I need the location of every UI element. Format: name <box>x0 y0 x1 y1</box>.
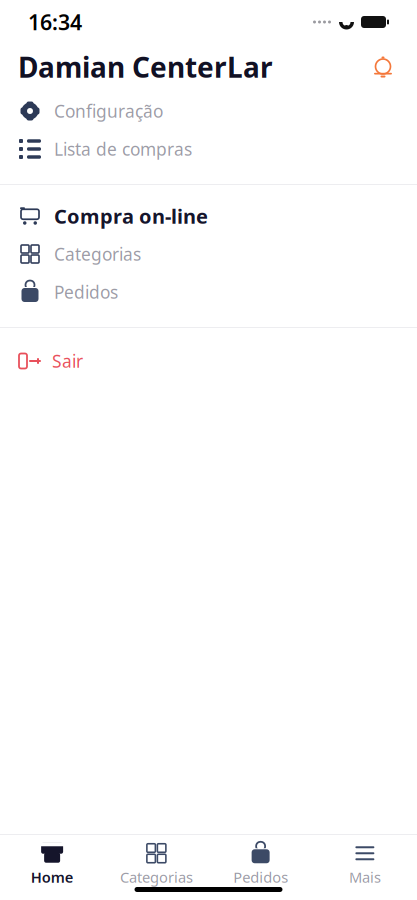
staticText: Mais <box>349 867 381 887</box>
staticText: Configuração <box>54 99 163 122</box>
button[interactable]: Categorias <box>104 838 208 891</box>
staticText: Categorias <box>120 867 193 887</box>
staticText: Categorias <box>54 242 141 265</box>
button[interactable]: Configuração <box>0 92 417 130</box>
button[interactable]: Lista de compras <box>0 130 417 168</box>
button[interactable]: Notifications <box>367 51 399 83</box>
staticText: Sair <box>52 349 83 372</box>
button[interactable]: Mais <box>313 838 417 891</box>
staticText: 16:34 <box>28 8 82 36</box>
staticText: Compra on-line <box>54 203 208 229</box>
staticText: Home <box>31 867 74 887</box>
staticText: Damian CenterLar <box>18 48 273 86</box>
button[interactable]: Pedidos <box>0 273 417 311</box>
button[interactable]: Sair <box>0 342 417 380</box>
button[interactable]: Pedidos <box>208 838 313 891</box>
button[interactable]: Categorias <box>0 235 417 273</box>
button[interactable]: Compra on-line <box>0 197 417 235</box>
staticText: Pedidos <box>233 867 288 887</box>
button[interactable]: Home <box>0 838 104 891</box>
staticText: Pedidos <box>54 280 118 303</box>
staticText: Lista de compras <box>54 137 192 160</box>
